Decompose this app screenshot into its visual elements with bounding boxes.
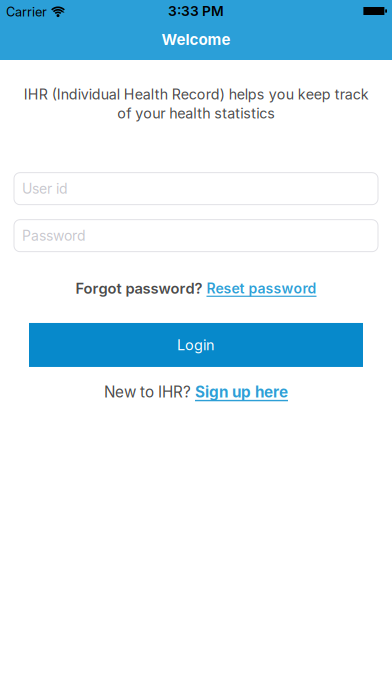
button[interactable]: Login [29, 323, 363, 367]
staticText: User id [22, 180, 68, 197]
staticText: Welcome [161, 31, 230, 48]
staticText: IHR (Individual Health Record) helps you… [23, 86, 368, 122]
staticText: 3:33 PM [168, 3, 224, 19]
button[interactable]: Reset password [206, 280, 316, 297]
staticText: Carrier [6, 4, 47, 19]
staticText: Login [177, 336, 215, 353]
staticText: Sign up here [195, 383, 288, 401]
button[interactable]: Sign up here [195, 383, 288, 401]
staticText: Reset password [206, 280, 316, 297]
staticText: Forgot password? [75, 280, 206, 297]
textField[interactable]: Password [14, 220, 378, 252]
staticText: Password [22, 227, 86, 244]
textField[interactable]: User id [14, 173, 378, 205]
staticText: New to IHR? [104, 383, 195, 401]
